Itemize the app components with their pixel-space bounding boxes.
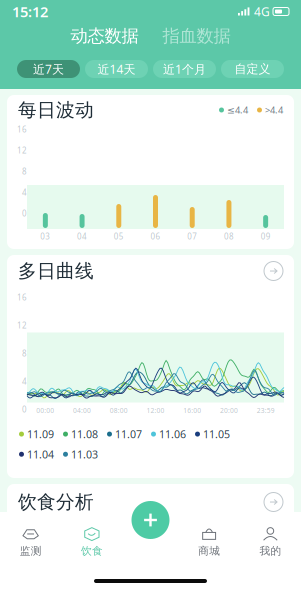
- staticText: 16: [17, 292, 27, 303]
- staticText: 动态数据: [70, 25, 138, 47]
- staticText: 11.03: [71, 447, 98, 461]
- staticText: 多日曲线: [18, 259, 94, 282]
- staticText: 16:00: [183, 406, 201, 415]
- staticText: 我的: [259, 544, 281, 557]
- staticText: 11.08: [71, 427, 98, 441]
- staticText: 12: [17, 145, 27, 156]
- staticText: 08: [224, 231, 234, 242]
- staticText: 00:00: [36, 406, 54, 415]
- button[interactable]: 动态数据: [58, 25, 150, 47]
- staticText: 11.09: [27, 427, 54, 441]
- button[interactable]: 自定义: [221, 60, 284, 78]
- staticText: 0: [22, 404, 27, 415]
- staticText: 20:00: [220, 406, 238, 415]
- staticText: 06: [150, 231, 160, 242]
- staticText: 8: [22, 166, 27, 177]
- button[interactable]: 近14天: [85, 60, 148, 78]
- staticText: 近14天: [97, 61, 135, 77]
- button[interactable]: 查看更多: [264, 492, 283, 511]
- staticText: 09: [261, 231, 271, 242]
- button[interactable]: 查看更多: [264, 261, 283, 280]
- button[interactable]: 我的: [240, 521, 301, 563]
- staticText: 4G: [254, 3, 270, 19]
- staticText: 8: [22, 348, 27, 359]
- staticText: 11.05: [203, 427, 230, 441]
- staticText: 05: [114, 231, 124, 242]
- staticText: ≤4.4: [227, 104, 248, 116]
- staticText: >4.4: [265, 104, 283, 116]
- staticText: 商城: [198, 544, 220, 557]
- button[interactable]: 添加记录: [128, 498, 172, 542]
- staticText: 4: [22, 187, 27, 198]
- staticText: 07: [187, 231, 197, 242]
- staticText: 自定义: [234, 62, 270, 76]
- staticText: 12: [17, 320, 27, 331]
- staticText: 近7天: [33, 61, 64, 77]
- staticText: 04:00: [73, 406, 91, 415]
- staticText: 08:00: [110, 406, 128, 415]
- staticText: 监测: [20, 544, 42, 557]
- staticText: 04: [77, 231, 87, 242]
- button[interactable]: 近7天: [17, 60, 80, 78]
- staticText: 饮食分析: [18, 490, 94, 513]
- staticText: 近1个月: [163, 61, 206, 77]
- staticText: 12:00: [146, 406, 164, 415]
- staticText: 每日波动: [18, 98, 94, 121]
- staticText: 03: [40, 231, 50, 242]
- button[interactable]: 商城: [178, 521, 240, 563]
- staticText: 23:59: [257, 406, 275, 415]
- staticText: 11.06: [159, 427, 186, 441]
- staticText: 11.07: [115, 427, 142, 441]
- button[interactable]: 监测: [0, 521, 61, 563]
- staticText: 11.04: [27, 447, 54, 461]
- staticText: 16: [17, 124, 27, 135]
- button[interactable]: 饮食: [61, 521, 122, 563]
- button[interactable]: 近1个月: [153, 60, 216, 78]
- staticText: 指血数据: [162, 25, 230, 47]
- staticText: 15:12: [12, 2, 48, 21]
- staticText: 0: [22, 208, 27, 219]
- staticText: 4: [22, 376, 27, 387]
- button[interactable]: 指血数据: [150, 25, 242, 47]
- staticText: 饮食: [81, 544, 103, 557]
